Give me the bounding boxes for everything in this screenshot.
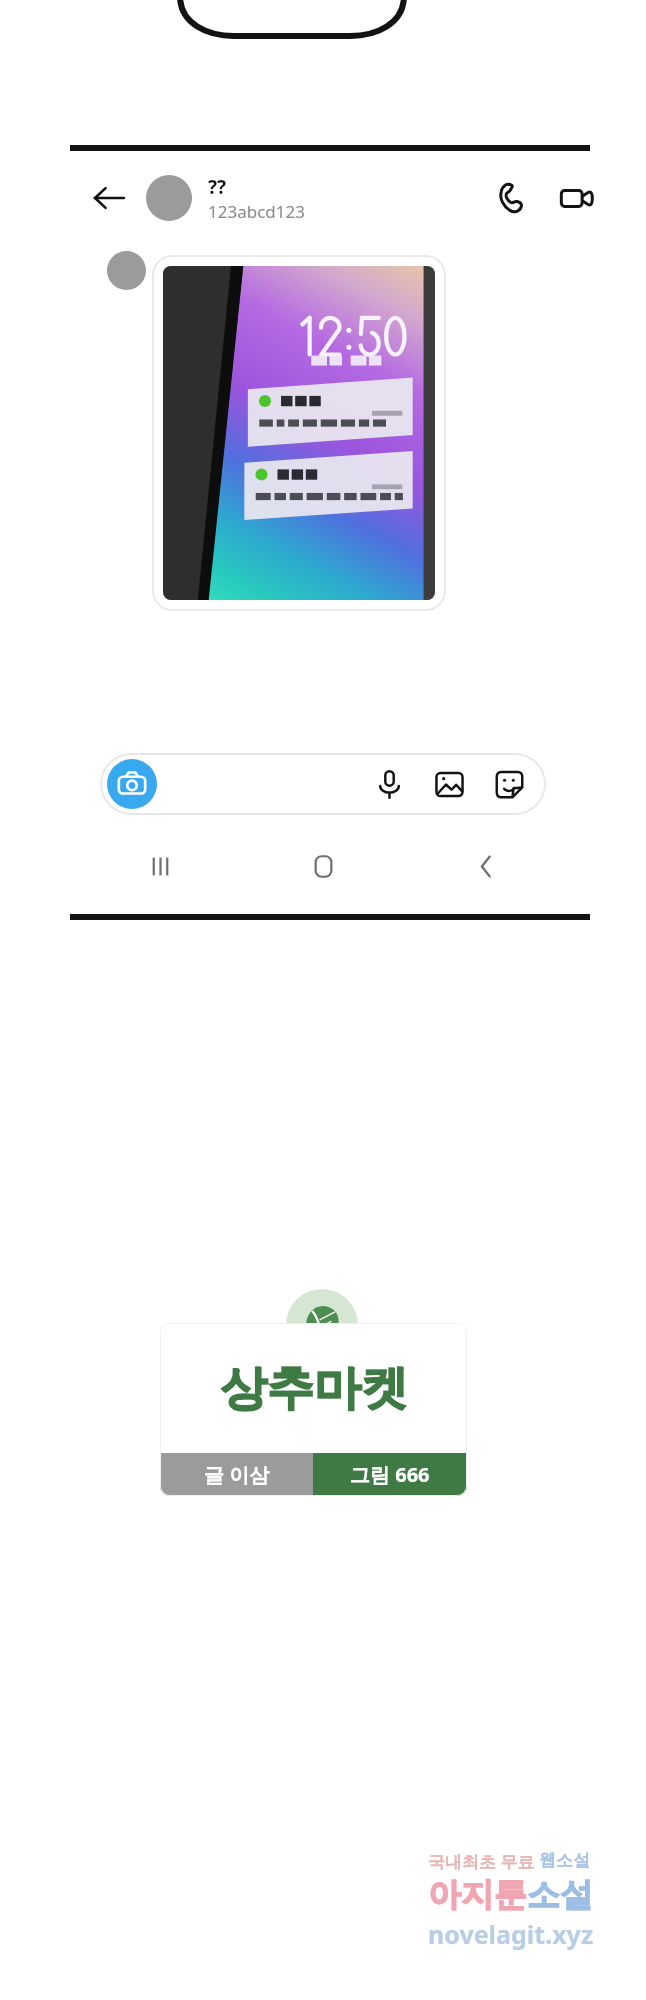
button[interactable]: Back	[86, 175, 132, 221]
button[interactable]: 상추마켓	[160, 1323, 467, 1453]
button[interactable]: Sangchu Market logo	[286, 1289, 358, 1361]
staticText: 그림 666	[350, 1461, 430, 1488]
staticText: 아지툰	[428, 1874, 527, 1916]
button[interactable]: Voice message	[366, 761, 412, 807]
button[interactable]: Video call	[552, 174, 600, 222]
button[interactable]: Camera	[100, 753, 546, 815]
staticText: 글 이삼	[204, 1461, 270, 1488]
button[interactable]: 그림 666	[313, 1453, 467, 1496]
button[interactable]: Stickers	[486, 761, 532, 807]
button[interactable]: Recents	[78, 835, 242, 897]
button[interactable]: Profile photo	[146, 175, 192, 221]
button[interactable]: Camera	[107, 759, 157, 809]
button[interactable]: Sender avatar	[107, 251, 146, 290]
staticText: 국내최초 무료	[428, 1850, 539, 1873]
button[interactable]: Shared photo	[152, 255, 446, 611]
staticText: 웹소설	[539, 1850, 590, 1871]
staticText: 123abcd123	[208, 200, 305, 223]
staticText: 소설	[527, 1874, 593, 1916]
button[interactable]: 글 이삼	[160, 1453, 313, 1496]
staticText: 상추마켓	[220, 1359, 408, 1418]
button[interactable]: Gallery	[426, 761, 472, 807]
button[interactable]: Home	[242, 835, 405, 897]
button[interactable]: Back	[405, 835, 568, 897]
staticText: novelagit.xyz	[428, 1917, 594, 1951]
button[interactable]: Voice call	[482, 174, 530, 222]
button[interactable]: ??	[208, 174, 482, 223]
staticText: ??	[208, 174, 227, 200]
